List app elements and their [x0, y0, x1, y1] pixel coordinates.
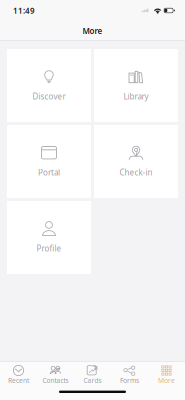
- button[interactable]: Profile: [7, 201, 91, 274]
- button[interactable]: Contacts: [37, 361, 74, 383]
- staticText: 11:49: [13, 5, 35, 16]
- button[interactable]: Portal: [7, 125, 91, 198]
- staticText: Discover: [32, 91, 65, 102]
- button[interactable]: Cards: [74, 361, 111, 383]
- staticText: Cards: [83, 376, 101, 385]
- button[interactable]: Library: [94, 49, 178, 122]
- staticText: Contacts: [42, 376, 68, 385]
- button[interactable]: Check-in: [94, 125, 178, 198]
- button[interactable]: Discover: [7, 49, 91, 122]
- staticText: Library: [123, 91, 148, 102]
- staticText: More: [158, 376, 175, 385]
- staticText: Recent: [8, 376, 29, 385]
- staticText: Profile: [36, 243, 61, 254]
- button[interactable]: Forms: [111, 361, 148, 383]
- button[interactable]: More: [148, 361, 185, 383]
- staticText: More: [82, 26, 102, 36]
- staticText: Forms: [120, 376, 139, 385]
- staticText: Check-in: [119, 167, 152, 178]
- button[interactable]: Recent: [0, 361, 37, 383]
- staticText: Portal: [38, 167, 60, 178]
